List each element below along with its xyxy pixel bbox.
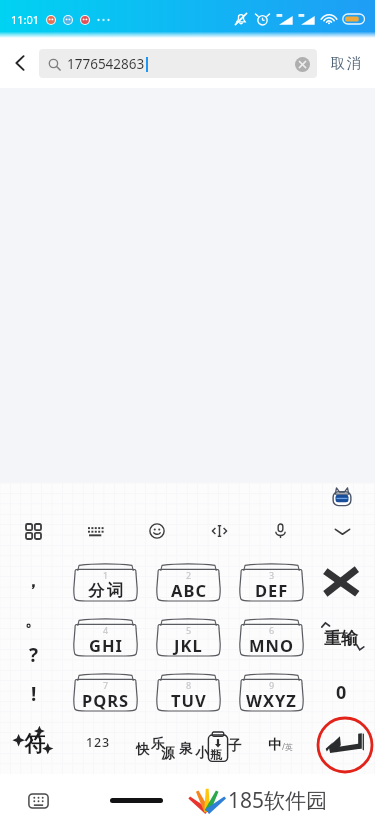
staticText: 3 bbox=[269, 569, 275, 581]
button[interactable]: 123 bbox=[73, 728, 123, 756]
staticText: 8 bbox=[186, 679, 192, 691]
staticText: 11:01 bbox=[11, 12, 40, 27]
button[interactable]: 8 bbox=[155, 672, 222, 712]
button[interactable]: emoji bbox=[136, 510, 178, 552]
staticText: WXYZ bbox=[246, 689, 297, 711]
button[interactable]: ， bbox=[9, 561, 57, 595]
staticText: 2 bbox=[186, 569, 192, 581]
staticText: ! bbox=[31, 681, 37, 707]
staticText: 123 bbox=[86, 734, 110, 751]
staticText: 取消 bbox=[330, 54, 362, 72]
staticText: 小 bbox=[195, 744, 209, 761]
button[interactable]: 取消 bbox=[317, 38, 375, 88]
button[interactable]: Hide keyboard bbox=[25, 788, 51, 814]
button[interactable]: 1 bbox=[72, 562, 139, 602]
staticText: GHI bbox=[89, 634, 123, 656]
button[interactable]: 符 bbox=[4, 725, 64, 763]
staticText: ， bbox=[24, 570, 42, 593]
staticText: 1 bbox=[103, 569, 109, 581]
staticText: 。 bbox=[25, 610, 42, 631]
staticText: 1776542863 bbox=[67, 55, 145, 73]
staticText: 6 bbox=[269, 624, 275, 636]
staticText: 泉 bbox=[179, 740, 193, 757]
staticText: 0 bbox=[336, 680, 347, 705]
button[interactable]: 7 bbox=[72, 672, 139, 712]
staticText: JKL bbox=[174, 634, 203, 656]
staticText: 子 bbox=[228, 737, 242, 754]
button[interactable]: ? bbox=[9, 638, 57, 672]
button[interactable]: Delete bbox=[313, 562, 369, 602]
staticText: 源 bbox=[161, 745, 175, 762]
staticText: MNO bbox=[249, 634, 295, 656]
button[interactable]: 4 bbox=[72, 617, 139, 657]
button[interactable]: 0 bbox=[313, 672, 369, 712]
staticText: DEF bbox=[255, 579, 289, 601]
button[interactable]: Assistant bbox=[330, 485, 354, 509]
staticText: 4 bbox=[103, 624, 109, 636]
staticText: TUV bbox=[171, 689, 207, 711]
button[interactable]: 2 bbox=[155, 562, 222, 602]
button[interactable]: Space bbox=[128, 718, 248, 760]
button[interactable]: 中 bbox=[256, 730, 304, 758]
button[interactable]: 9 bbox=[238, 672, 305, 712]
staticText: 快 bbox=[136, 741, 150, 758]
button[interactable]: 5 bbox=[155, 617, 222, 657]
staticText: 中 bbox=[268, 736, 282, 753]
button[interactable]: Enter bbox=[317, 717, 373, 773]
staticText: ? bbox=[29, 642, 39, 668]
staticText: 9 bbox=[269, 679, 275, 691]
button[interactable]: down bbox=[321, 510, 363, 552]
staticText: 7 bbox=[103, 679, 109, 691]
button[interactable]: ! bbox=[9, 677, 57, 711]
staticText: 符 bbox=[24, 731, 45, 757]
button[interactable]: mic bbox=[259, 510, 301, 552]
button[interactable]: 1776542863 bbox=[39, 49, 317, 78]
staticText: 分词 bbox=[87, 581, 124, 601]
button[interactable]: 6 bbox=[238, 617, 305, 657]
button[interactable]: Back bbox=[0, 38, 39, 88]
staticText: 185软件园 bbox=[228, 786, 328, 814]
button[interactable]: kb bbox=[74, 510, 116, 552]
staticText: PQRS bbox=[82, 689, 130, 711]
button[interactable]: 。 bbox=[9, 601, 57, 635]
button[interactable]: cursor bbox=[198, 510, 240, 552]
staticText: 乐 bbox=[151, 735, 165, 752]
button[interactable]: 3 bbox=[238, 562, 305, 602]
button[interactable]: grid bbox=[12, 510, 54, 552]
button[interactable]: 重输 bbox=[313, 617, 369, 657]
staticText: /英 bbox=[282, 741, 293, 752]
staticText: 5 bbox=[186, 624, 192, 636]
staticText: 瓶 bbox=[210, 747, 222, 762]
staticText: ABC bbox=[171, 579, 207, 601]
staticText: 重输 bbox=[324, 628, 358, 649]
button[interactable]: Clear text bbox=[294, 56, 310, 72]
